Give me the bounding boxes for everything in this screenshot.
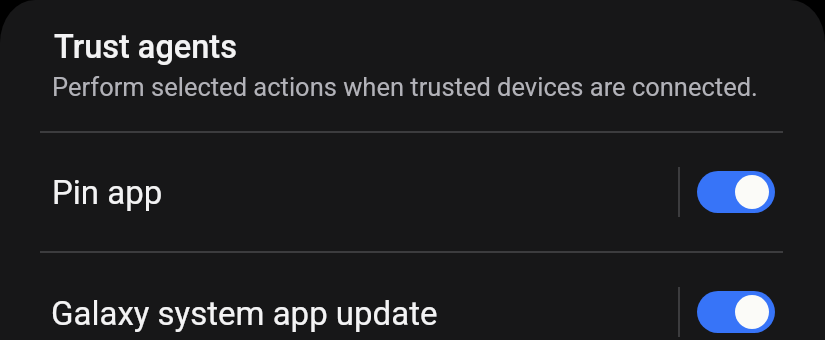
staticText: Perform selected actions when trusted de… [52,72,758,102]
staticText: Trust agents [54,28,237,66]
staticText: Pin app [52,173,163,212]
button[interactable]: Pin app [0,133,678,251]
button[interactable]: Galaxy system app update [0,253,678,340]
button[interactable]: Galaxy system app update switch, on [697,291,775,333]
button[interactable]: Pin app switch, on [697,171,775,213]
staticText: Galaxy system app update [51,294,438,333]
button[interactable]: Trust agents [0,0,825,131]
